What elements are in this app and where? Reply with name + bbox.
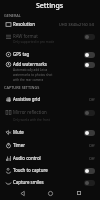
- button[interactable]: Resolution: [0, 21, 100, 29]
- staticText: Mirror reflection: [13, 109, 47, 115]
- staticText: GENERAL: [4, 13, 21, 18]
- staticText: Only supported in pro mode: [13, 40, 55, 44]
- button[interactable]: Timer: [0, 142, 100, 150]
- button[interactable]: Toggle: [84, 180, 95, 186]
- staticText: Mute: [13, 129, 24, 135]
- staticText: Timer: [13, 142, 25, 148]
- button[interactable]: Audio control: [0, 155, 100, 163]
- button[interactable]: Recents: [72, 186, 86, 200]
- staticText: Only works with the front camera: [13, 118, 59, 124]
- staticText: Touch to capture: [13, 167, 48, 173]
- staticText: Settings: [36, 1, 64, 11]
- button[interactable]: GPS tag: [0, 51, 100, 59]
- button[interactable]: Capture smiles: [0, 179, 100, 187]
- staticText: Off: [89, 156, 95, 161]
- staticText: Add watermarks: [13, 61, 47, 67]
- button[interactable]: Toggle: [84, 52, 95, 58]
- staticText: Automatically add Leica watermarks to ph…: [13, 68, 59, 82]
- staticText: Audio control: [13, 155, 41, 161]
- button[interactable]: Toggle: [84, 34, 95, 40]
- staticText: Assistive grid: [13, 96, 41, 102]
- staticText: Off: [89, 97, 95, 102]
- button[interactable]: Add watermarks: [0, 61, 100, 83]
- staticText: Capture smiles: [13, 179, 44, 185]
- button[interactable]: Toggle: [84, 168, 95, 174]
- button[interactable]: Toggle: [84, 110, 95, 116]
- button[interactable]: RAW format: [0, 33, 100, 47]
- staticText: GPS tag: [13, 51, 30, 57]
- button[interactable]: Toggle: [84, 62, 95, 68]
- staticText: CAPTURE SETTINGS: [4, 85, 40, 90]
- button[interactable]: Touch to capture: [0, 167, 100, 175]
- button[interactable]: Back: [15, 186, 29, 200]
- button[interactable]: Toggle: [84, 130, 95, 136]
- staticText: RAW format: [13, 33, 38, 39]
- button[interactable]: Assistive grid: [0, 96, 100, 104]
- staticText: Off: [89, 143, 95, 148]
- staticText: UHD 3840x2160 3:0: [59, 22, 95, 27]
- button[interactable]: Mirror reflection: [0, 109, 100, 124]
- button[interactable]: Home: [43, 186, 57, 200]
- staticText: Resolution: [13, 21, 35, 27]
- button[interactable]: Mute: [0, 129, 100, 137]
